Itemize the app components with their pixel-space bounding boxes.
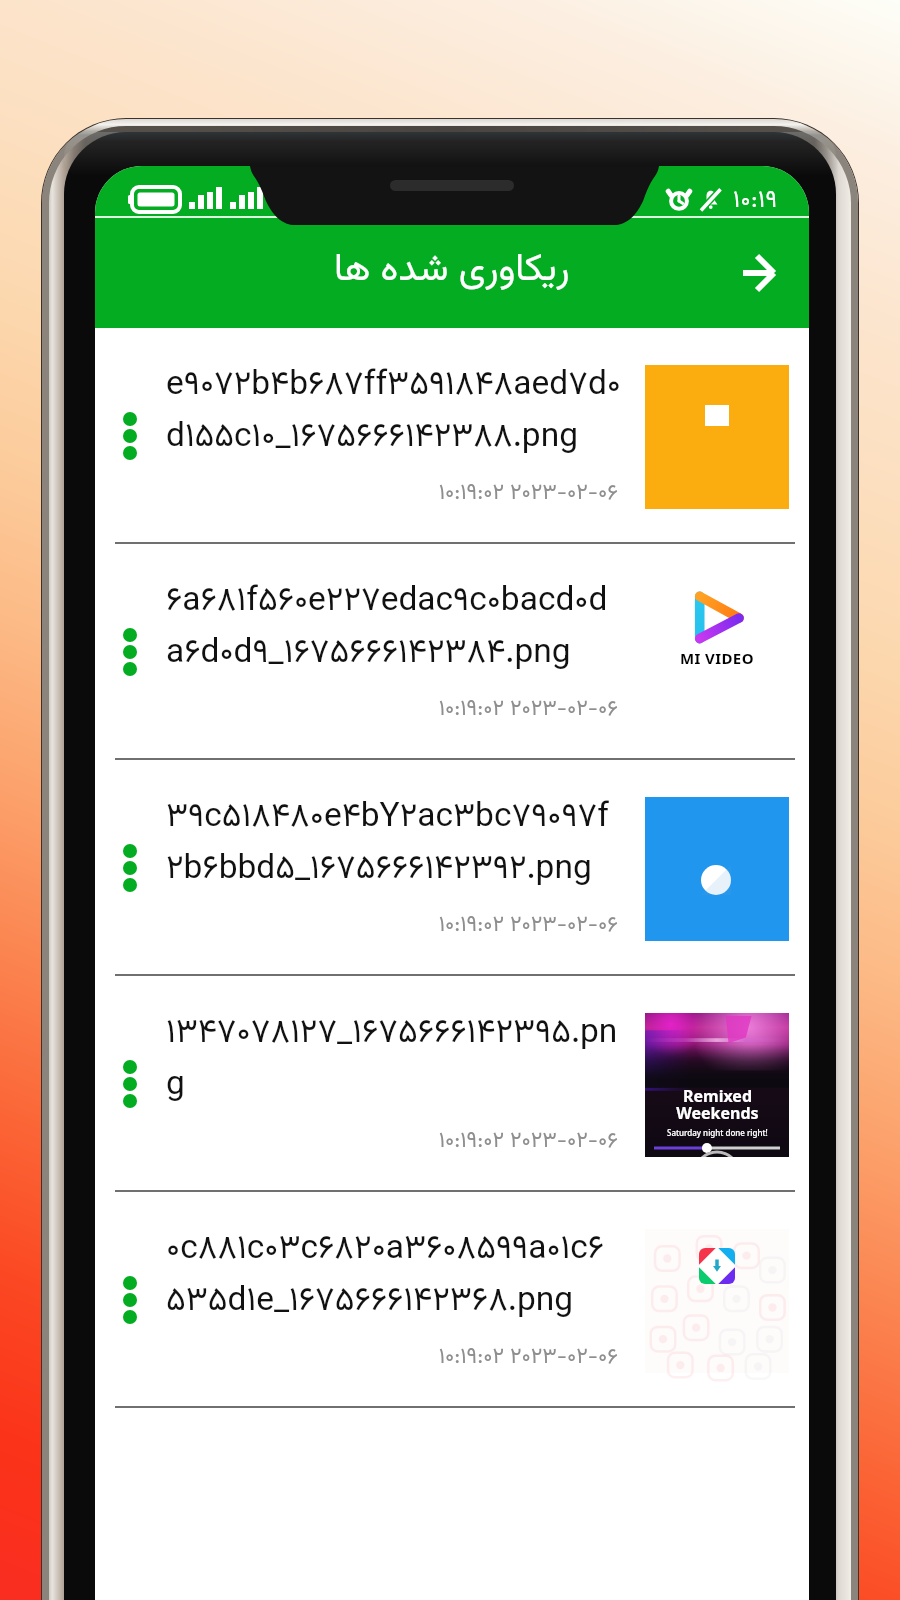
button[interactable]: More options <box>95 328 809 544</box>
staticText: d۱۵۵c۱۰_۱۶۷۵۶۶۶۱۴۲۳۸۸.png <box>166 412 578 464</box>
staticText: ۱۰:۱۹:۰۲ ۲۰۲۳-۰۲-۰۶ <box>95 1124 618 1158</box>
button[interactable]: More options <box>95 976 809 1192</box>
button[interactable]: More options <box>117 838 143 898</box>
button[interactable]: Back <box>727 241 791 305</box>
staticText: ۱۰:۱۹ <box>733 182 778 220</box>
button[interactable]: More options <box>95 760 809 976</box>
staticText: ۶a۶۸۱f۵۶۰e۲۲۷edac۹c۰bacd۰d <box>166 576 608 628</box>
staticText: ۲b۶bbd۵_۱۶۷۵۶۶۶۱۴۲۳۹۲.png <box>166 844 592 896</box>
staticText: ۳۹c۵۱۸۴۸۰e۴bY۲ac۳bc۷۹۰۹۷f <box>166 792 609 844</box>
staticText: ۱۳۴۷۰۷۸۱۲۷_۱۶۷۵۶۶۶۱۴۲۳۹۵.pn <box>166 1008 618 1060</box>
staticText: g <box>166 1060 185 1112</box>
staticText: ریکاوری شده ها <box>334 241 570 300</box>
staticText: ۱۰:۱۹:۰۲ ۲۰۲۳-۰۲-۰۶ <box>95 1340 618 1374</box>
staticText: Remixed Weekends <box>676 1085 759 1124</box>
button[interactable]: More options <box>117 1270 143 1330</box>
staticText: ۱۰:۱۹:۰۲ ۲۰۲۳-۰۲-۰۶ <box>95 692 618 726</box>
button[interactable]: More options <box>117 406 143 466</box>
button[interactable]: More options <box>95 544 809 760</box>
staticText: a۶d۰d۹_۱۶۷۵۶۶۶۱۴۲۳۸۴.png <box>166 628 571 680</box>
staticText: ۵۳۵d۱e_۱۶۷۵۶۶۶۱۴۲۳۶۸.png <box>166 1276 574 1328</box>
staticText: ۱۰:۱۹:۰۲ ۲۰۲۳-۰۲-۰۶ <box>95 908 618 942</box>
staticText: ۱۰:۱۹:۰۲ ۲۰۲۳-۰۲-۰۶ <box>95 476 618 510</box>
staticText: Saturday night done right! <box>667 1127 768 1138</box>
button[interactable]: More options <box>95 1192 809 1408</box>
button[interactable]: More options <box>117 1054 143 1114</box>
staticText: e۹۰۷۲b۴b۶۸۷ff۳۵۹۱۸۴۸aed۷d۰ <box>166 360 621 412</box>
staticText: ۰c۸۸۱c۰۳c۶۸۲۰a۳۶۰۸۵۹۹a۰۱c۶ <box>166 1224 605 1276</box>
staticText: MI VIDEO <box>680 648 754 668</box>
button[interactable]: More options <box>117 622 143 682</box>
